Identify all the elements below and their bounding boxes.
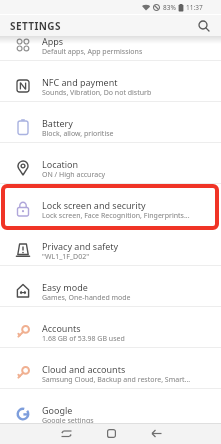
staticText: Block, allow, prioritise	[42, 129, 114, 139]
staticText: Games, One-handed mode	[42, 293, 131, 303]
staticText: Accounts	[42, 322, 81, 334]
staticText: ON / High accuracy	[42, 170, 106, 180]
button[interactable]: Easy mode	[0, 266, 221, 307]
staticText: Lock screen, Face Recognition, Fingerpri…	[42, 211, 190, 221]
button[interactable]	[49, 423, 83, 444]
button[interactable]: Cloud and accounts	[0, 348, 221, 389]
button[interactable]	[139, 423, 173, 444]
staticText: Easy mode	[42, 281, 88, 293]
staticText: 11:37	[186, 3, 203, 12]
staticText: Google settings	[42, 416, 94, 426]
button[interactable]: Google	[0, 389, 221, 430]
button[interactable]: Accounts	[0, 307, 221, 348]
staticText: 83%	[163, 3, 176, 12]
staticText: Sounds, Vibration, Do not disturb	[42, 88, 152, 98]
button[interactable]: Apps	[0, 20, 221, 61]
button[interactable]: NFC and payment	[0, 61, 221, 102]
button[interactable]: Privacy and safety	[0, 225, 221, 266]
staticText: NFC and payment	[42, 76, 118, 88]
staticText: Cloud and accounts	[42, 363, 126, 375]
button[interactable]: Location	[0, 143, 221, 184]
staticText: Samsung Cloud, Backup and restore, Smart…	[42, 375, 191, 385]
staticText: "WL1_1F_D02"	[42, 252, 90, 262]
staticText: Privacy and safety	[42, 240, 119, 252]
staticText: Google	[42, 404, 73, 416]
staticText: Battery	[42, 117, 73, 129]
staticText: Default apps, App permissions	[42, 47, 143, 57]
staticText: Location	[42, 158, 79, 170]
button[interactable]	[94, 423, 128, 444]
button[interactable]: Battery	[0, 102, 221, 143]
button[interactable]	[197, 19, 211, 33]
staticText: Apps	[42, 35, 64, 47]
button[interactable]: Lock screen and security	[0, 184, 221, 225]
staticText: Lock screen and security	[42, 199, 146, 211]
staticText: SETTINGS	[10, 19, 61, 33]
staticText: 1.68 GB of 53.98 GB used	[42, 334, 125, 344]
